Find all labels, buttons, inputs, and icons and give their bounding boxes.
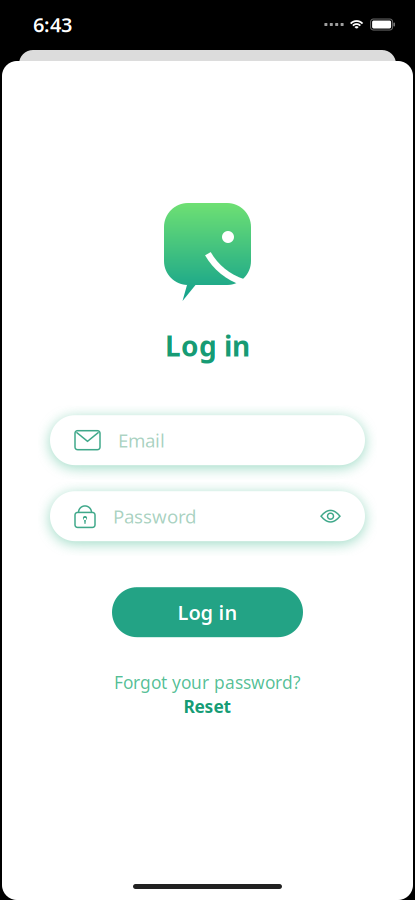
staticText: Log in: [165, 327, 250, 364]
button[interactable]: Forgot your password?: [114, 669, 301, 695]
staticText: Log in: [177, 599, 237, 625]
button[interactable]: Password: [2, 491, 413, 541]
staticText: Password: [113, 504, 196, 529]
staticText: Reset: [183, 695, 231, 718]
staticText: 6:43: [33, 11, 72, 38]
staticText: Email: [118, 428, 165, 453]
button[interactable]: Reset: [183, 695, 231, 717]
button[interactable]: Email: [2, 415, 413, 465]
staticText: Forgot your password?: [114, 671, 301, 694]
button[interactable]: Log in: [112, 587, 303, 637]
